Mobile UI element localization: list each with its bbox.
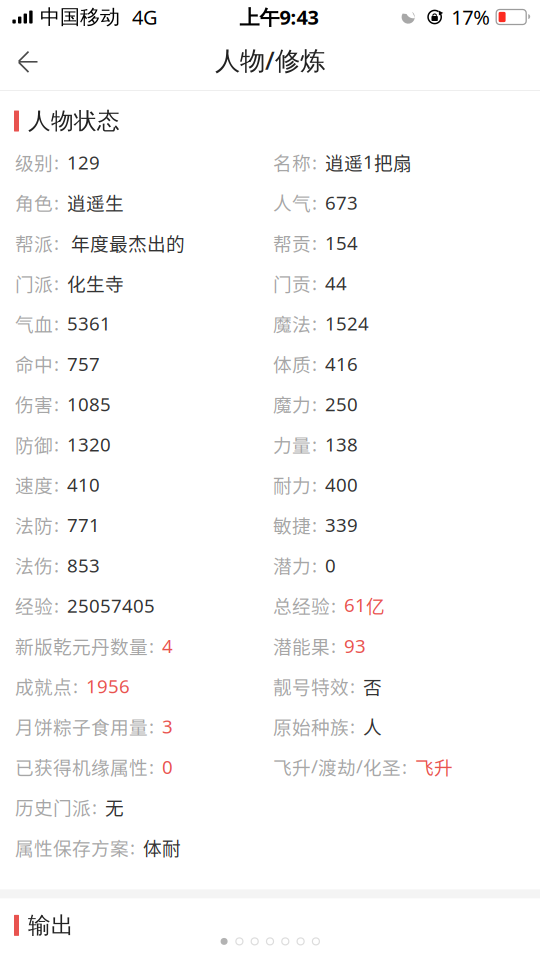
staticText: 1320: [67, 431, 111, 457]
staticText: 人物状态: [28, 107, 120, 135]
staticText: 力量: [273, 431, 311, 458]
staticText: 1085: [67, 391, 111, 417]
button[interactable]: 返回: [0, 34, 56, 90]
staticText: 经验: [15, 592, 53, 619]
staticText: 命中: [15, 350, 53, 377]
staticText: 飞升: [415, 753, 453, 780]
staticText: :: [130, 834, 135, 860]
staticText: :: [402, 754, 407, 779]
staticText: 年度最杰出的: [67, 229, 185, 256]
staticText: 门贡: [273, 269, 311, 296]
staticText: 月饼粽子食用量: [15, 713, 148, 740]
staticText: 帮派: [15, 229, 53, 256]
staticText: 已获得机缘属性: [15, 753, 148, 780]
staticText: 属性保存方案: [15, 834, 129, 861]
staticText: 潜能果: [273, 632, 330, 659]
staticText: 体耐: [143, 834, 181, 861]
staticText: 原始种族: [273, 713, 349, 740]
staticText: 飞升/渡劫/化圣: [273, 753, 401, 780]
staticText: :: [312, 391, 317, 417]
staticText: 历史门派: [15, 793, 91, 820]
staticText: 410: [67, 472, 100, 497]
staticText: :: [54, 230, 59, 255]
staticText: :: [73, 673, 78, 699]
staticText: 93: [344, 633, 366, 658]
staticText: 61亿: [344, 592, 385, 619]
staticText: 无: [105, 793, 124, 820]
staticText: :: [54, 351, 59, 376]
staticText: 339: [325, 512, 358, 537]
staticText: :: [149, 754, 154, 779]
staticText: :: [54, 391, 59, 417]
staticText: :: [312, 270, 317, 296]
staticText: :: [350, 714, 355, 739]
staticText: 成就点: [15, 672, 72, 699]
staticText: 154: [325, 230, 358, 255]
staticText: 总经验: [273, 592, 330, 619]
staticText: 4G: [132, 3, 158, 31]
staticText: 3: [162, 714, 173, 739]
staticText: 44: [325, 270, 347, 296]
staticText: 人物/修炼: [215, 43, 325, 77]
staticText: 靓号特效: [273, 672, 349, 699]
staticText: 魔力: [273, 390, 311, 417]
staticText: :: [350, 673, 355, 699]
staticText: :: [54, 552, 59, 578]
staticText: 级别: [15, 149, 53, 176]
staticText: 129: [67, 149, 100, 175]
staticText: 魔法: [273, 310, 311, 337]
staticText: :: [312, 230, 317, 255]
staticText: 逍遥生: [67, 189, 124, 216]
staticText: 帮贡: [273, 229, 311, 256]
staticText: 法伤: [15, 552, 53, 579]
staticText: :: [149, 714, 154, 739]
staticText: 250: [325, 391, 358, 417]
staticText: 气血: [15, 310, 53, 337]
staticText: :: [312, 472, 317, 497]
staticText: :: [312, 512, 317, 537]
staticText: 416: [325, 351, 358, 376]
staticText: 潜力: [273, 552, 311, 579]
staticText: 防御: [15, 431, 53, 458]
staticText: 771: [67, 512, 100, 537]
staticText: 853: [67, 552, 100, 578]
staticText: :: [149, 633, 154, 658]
staticText: :: [54, 512, 59, 537]
staticText: 法防: [15, 511, 53, 538]
staticText: 17%: [451, 3, 490, 31]
staticText: 速度: [15, 471, 53, 498]
staticText: 400: [325, 472, 358, 497]
staticText: :: [54, 593, 59, 618]
staticText: 757: [67, 351, 100, 376]
staticText: :: [312, 190, 317, 215]
staticText: 体质: [273, 350, 311, 377]
staticText: 4: [162, 633, 173, 658]
staticText: 673: [325, 190, 358, 215]
staticText: :: [331, 633, 336, 658]
staticText: 逍遥1把扇: [325, 149, 412, 176]
staticText: 门派: [15, 269, 53, 296]
staticText: :: [54, 149, 59, 175]
staticText: 138: [325, 431, 358, 457]
staticText: :: [312, 431, 317, 457]
staticText: 输出: [28, 911, 74, 940]
staticText: 1524: [325, 311, 369, 336]
staticText: 新版乾元丹数量: [15, 632, 148, 659]
staticText: :: [54, 311, 59, 336]
staticText: 0: [162, 754, 173, 779]
staticText: 人: [363, 713, 382, 740]
staticText: 伤害: [15, 390, 53, 417]
staticText: 中国移动: [40, 4, 120, 30]
staticText: 敏捷: [273, 511, 311, 538]
staticText: 上午9:43: [240, 3, 319, 31]
staticText: 1956: [86, 673, 130, 699]
staticText: 25057405: [67, 593, 155, 618]
staticText: :: [312, 351, 317, 376]
staticText: 耐力: [273, 471, 311, 498]
staticText: 0: [325, 552, 336, 578]
staticText: 角色: [15, 189, 53, 216]
staticText: 化生寺: [67, 269, 124, 296]
